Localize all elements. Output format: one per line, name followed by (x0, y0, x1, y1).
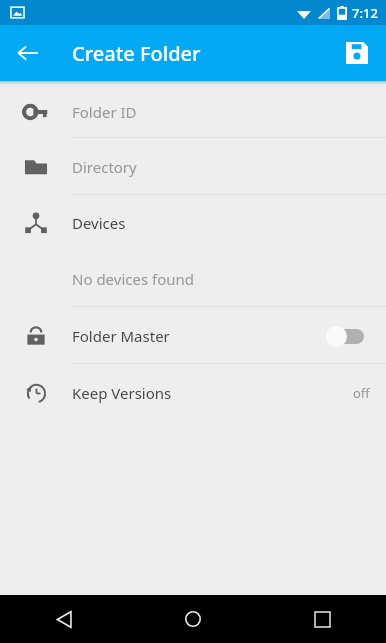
button[interactable]: Recent apps (298, 595, 346, 643)
staticText: 7:12 (352, 4, 378, 22)
button[interactable]: Folder ID (0, 85, 386, 138)
staticText: Directory (72, 157, 386, 177)
button[interactable]: Back (40, 595, 88, 643)
button[interactable]: Folder Master (0, 307, 386, 364)
button[interactable]: No devices found (0, 251, 386, 307)
button[interactable]: Directory (0, 138, 386, 195)
staticText: Folder Master (72, 326, 326, 346)
staticText: No devices found (72, 269, 386, 289)
staticText: off (353, 384, 370, 402)
button[interactable]: Folder Master toggle (326, 325, 370, 347)
button[interactable]: Devices (0, 195, 386, 251)
button[interactable]: Keep Versions (0, 364, 386, 421)
staticText: Keep Versions (72, 383, 353, 403)
button[interactable]: Save (333, 29, 381, 77)
staticText: Devices (72, 213, 386, 233)
button[interactable]: Back (4, 29, 52, 77)
button[interactable]: Home (169, 595, 217, 643)
staticText: Folder ID (72, 102, 386, 122)
staticText: Create Folder (72, 40, 201, 67)
